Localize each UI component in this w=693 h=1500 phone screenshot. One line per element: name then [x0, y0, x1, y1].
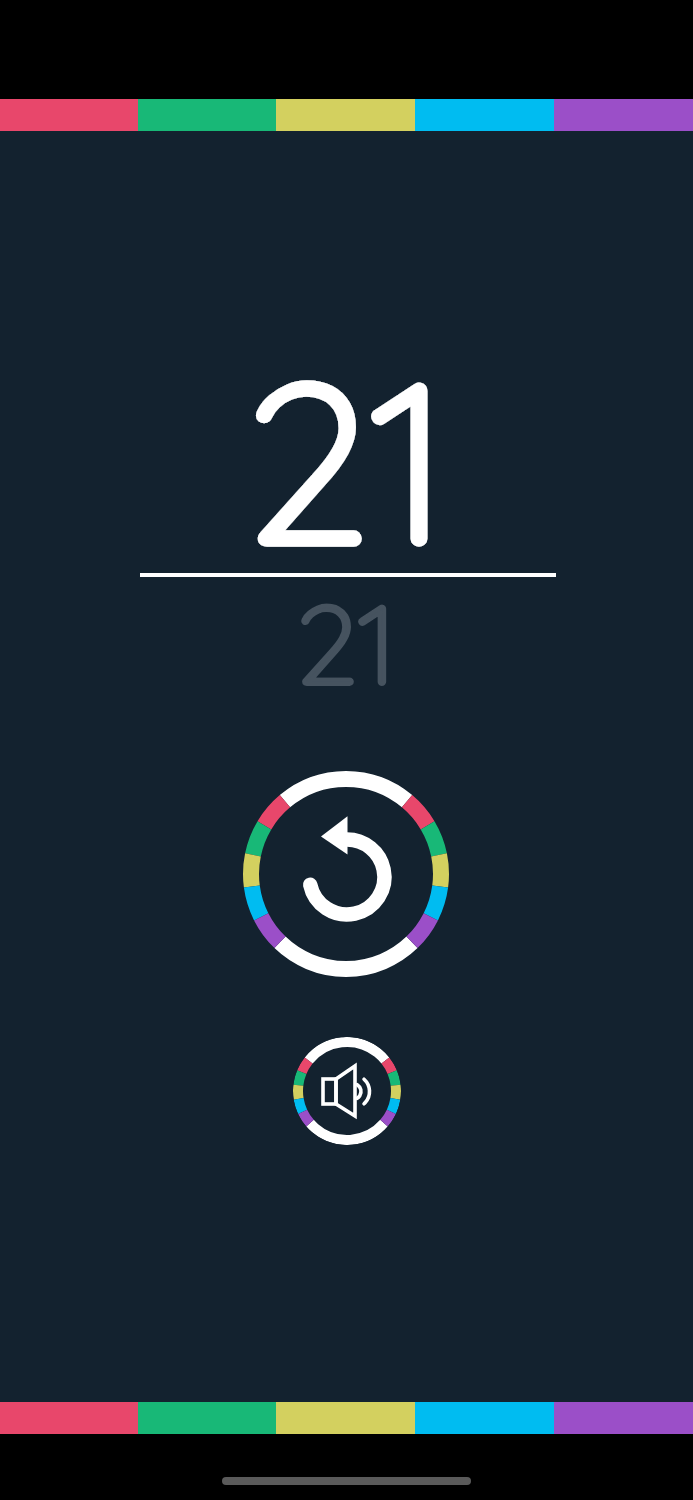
staticText: 21	[246, 319, 451, 599]
button[interactable]	[242, 770, 450, 978]
staticText: 21	[296, 573, 398, 712]
button[interactable]	[293, 1037, 401, 1145]
staticText: 21	[296, 573, 398, 712]
staticText: 21	[246, 319, 451, 599]
